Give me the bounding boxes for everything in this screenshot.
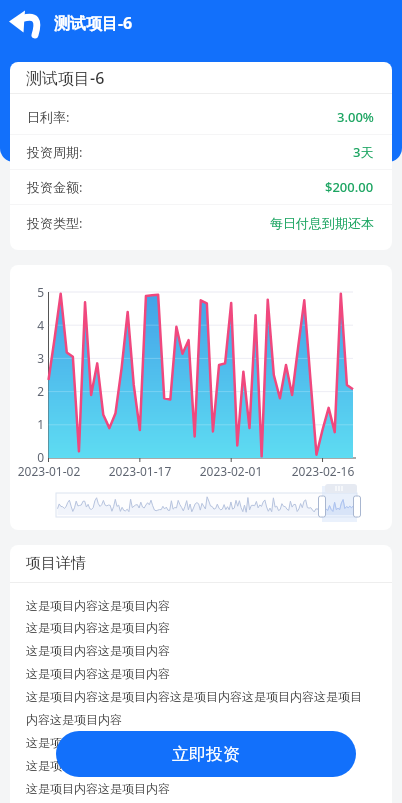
staticText: 每日付息到期还本 [270, 215, 374, 231]
staticText: 这是项目内容这是项目内容 这是项目内容这是项目内容 这是项目内容这是项目内容 这… [26, 598, 372, 797]
staticText: 2023-01-02 [10, 463, 89, 479]
staticText: 投资类型: [27, 214, 83, 232]
button[interactable] [0, 0, 50, 46]
staticText: 项目详情 [26, 554, 86, 573]
staticText: $200.00 [325, 178, 374, 196]
staticText: 2023-02-16 [283, 463, 363, 479]
staticText: 3天 [353, 143, 374, 161]
staticText: 立即投资 [172, 744, 240, 765]
staticText: 3 [20, 350, 44, 366]
staticText: 2023-02-01 [191, 463, 271, 479]
staticText: 1 [20, 416, 44, 432]
staticText: 2 [20, 383, 44, 399]
staticText: 投资周期: [27, 143, 83, 161]
staticText: 2023-01-17 [100, 463, 180, 479]
staticText: 测试项目-6 [26, 67, 105, 89]
button[interactable]: 立即投资 [56, 731, 356, 777]
staticText: 3.00% [337, 108, 374, 126]
staticText: 0 [20, 449, 44, 465]
staticText: 日利率: [27, 108, 70, 126]
staticText: 测试项目-6 [54, 12, 133, 34]
staticText: 5 [20, 284, 44, 300]
staticText: 4 [20, 317, 44, 333]
staticText: 投资金额: [27, 178, 83, 196]
